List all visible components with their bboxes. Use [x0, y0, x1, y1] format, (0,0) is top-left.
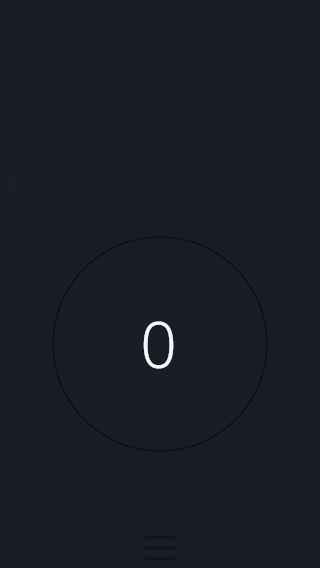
- button[interactable]: More options: [136, 532, 184, 564]
- staticText: 0: [140, 300, 177, 387]
- button[interactable]: Counter dial, 0: [52, 236, 268, 452]
